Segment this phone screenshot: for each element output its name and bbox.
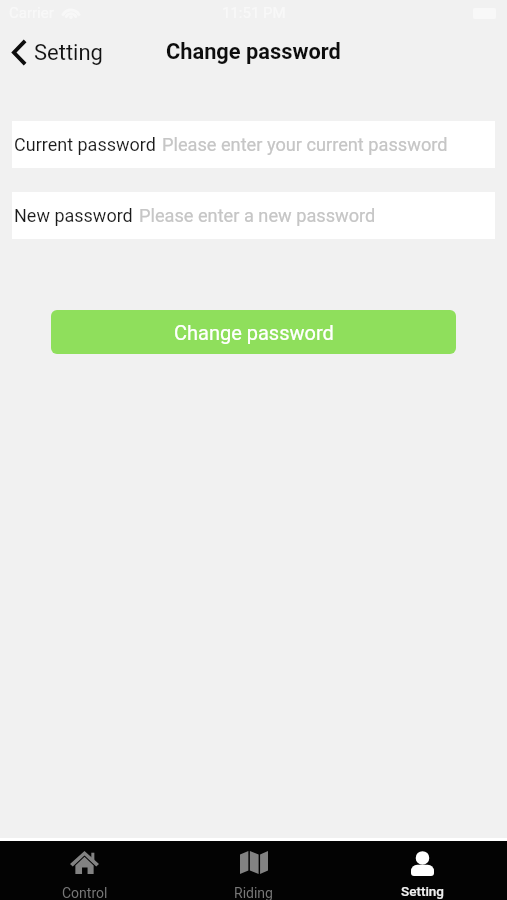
staticText: Change password (174, 321, 334, 344)
staticText: Setting (401, 883, 445, 899)
staticText: Please enter a new password (139, 205, 376, 226)
button[interactable]: Control (0, 841, 169, 864)
button[interactable]: New password (12, 192, 495, 239)
staticText: Control (62, 885, 108, 900)
button[interactable]: Setting (338, 841, 507, 866)
staticText: Setting (34, 40, 103, 66)
button[interactable]: Riding (169, 841, 338, 864)
button[interactable]: Change password (51, 310, 456, 354)
staticText: Please enter your current password (162, 134, 448, 155)
staticText: Current password (14, 134, 156, 155)
button[interactable]: Current password (12, 121, 495, 168)
button[interactable]: Back to Setting (0, 39, 113, 66)
staticText: Change password (166, 39, 341, 65)
staticText: New password (14, 205, 133, 226)
staticText: Riding (234, 885, 273, 900)
